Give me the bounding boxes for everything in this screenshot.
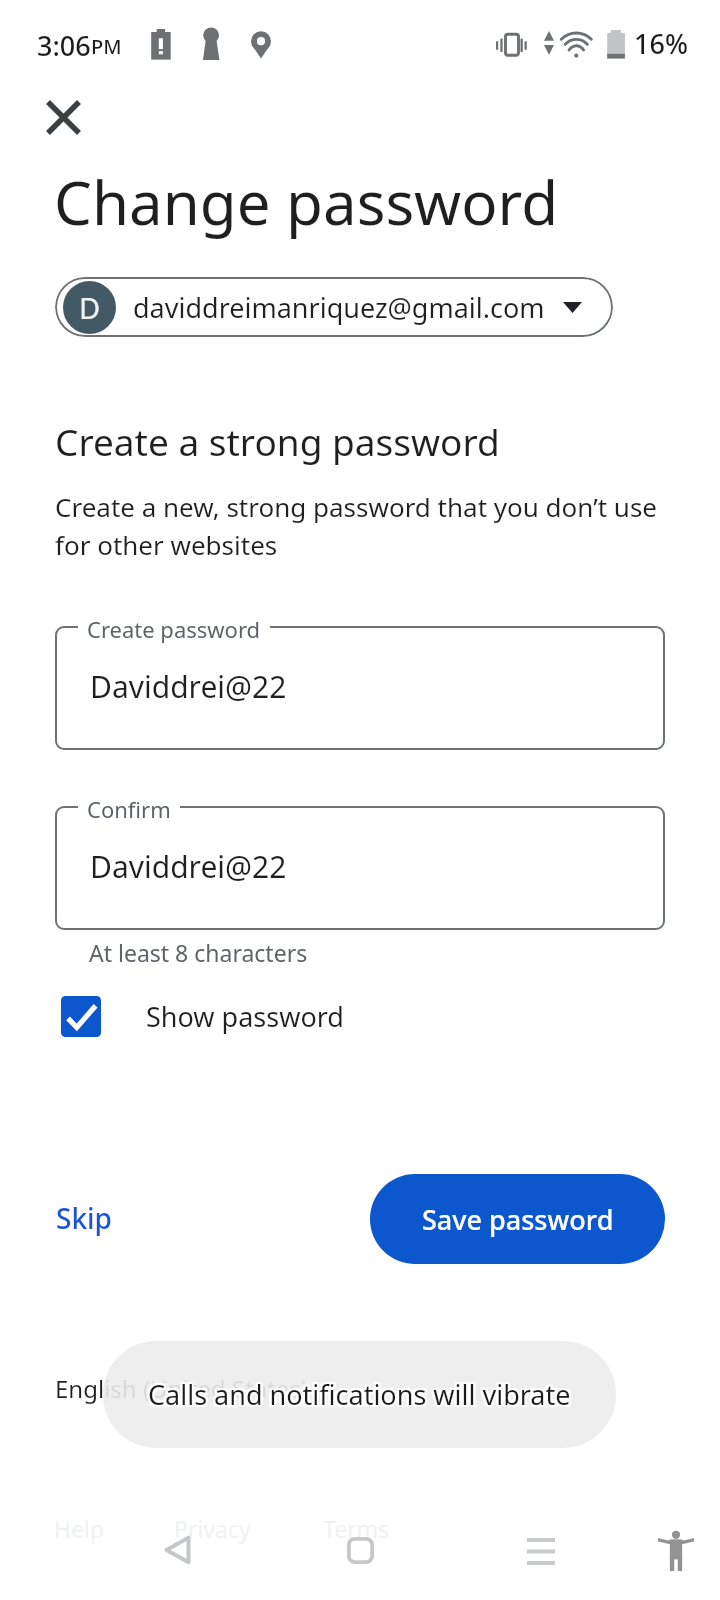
staticText: Calls and notifications will vibrate xyxy=(150,1374,573,1411)
staticText: daviddreimanriquez@gmail.com xyxy=(133,289,545,326)
staticText: Show password xyxy=(146,998,344,1035)
staticText: Calls and notifications will vibrate xyxy=(146,1374,569,1411)
button[interactable]: Privacy xyxy=(174,1513,251,1544)
staticText: Create a strong password xyxy=(55,416,500,466)
staticText: Change password xyxy=(54,161,559,243)
button[interactable]: English (United States) xyxy=(55,1372,309,1405)
staticText: Confirm xyxy=(87,794,171,824)
staticText: D xyxy=(79,288,101,327)
button[interactable]: Recent apps xyxy=(504,1513,578,1587)
button[interactable]: Home xyxy=(323,1513,397,1587)
staticText: Daviddrei@22 xyxy=(90,666,287,707)
button[interactable]: Back xyxy=(141,1513,215,1587)
button[interactable]: Help xyxy=(54,1513,105,1544)
staticText: Calls and notifications will vibrate xyxy=(146,1378,569,1415)
button[interactable]: D xyxy=(55,277,613,337)
staticText: PM xyxy=(91,33,122,60)
button[interactable]: Confirm xyxy=(55,806,665,930)
staticText: Create password xyxy=(87,614,261,644)
button[interactable]: Accessibility xyxy=(638,1513,712,1587)
staticText: Calls and notifications will vibrate xyxy=(148,1376,571,1413)
staticText: Create a new, strong password that you d… xyxy=(55,489,658,562)
staticText: Calls and notifications will vibrate xyxy=(150,1376,573,1413)
staticText: At least 8 characters xyxy=(89,937,308,968)
button[interactable]: Terms xyxy=(323,1513,390,1544)
staticText: Calls and notifications will vibrate xyxy=(146,1376,569,1413)
button[interactable]: Close xyxy=(30,84,96,150)
staticText: Daviddrei@22 xyxy=(90,846,287,887)
button[interactable]: Save password xyxy=(370,1174,665,1264)
button[interactable]: Create password xyxy=(55,626,665,750)
button[interactable]: Skip xyxy=(32,1185,136,1251)
staticText: 16% xyxy=(634,25,688,62)
staticText: Skip xyxy=(56,1199,112,1237)
staticText: Calls and notifications will vibrate xyxy=(150,1378,573,1415)
button[interactable]: Show password xyxy=(46,980,344,1052)
staticText: Save password xyxy=(422,1201,614,1238)
staticText: Calls and notifications will vibrate xyxy=(148,1378,571,1415)
staticText: Calls and notifications will vibrate xyxy=(148,1374,571,1411)
staticText: 3:06 xyxy=(37,27,91,64)
